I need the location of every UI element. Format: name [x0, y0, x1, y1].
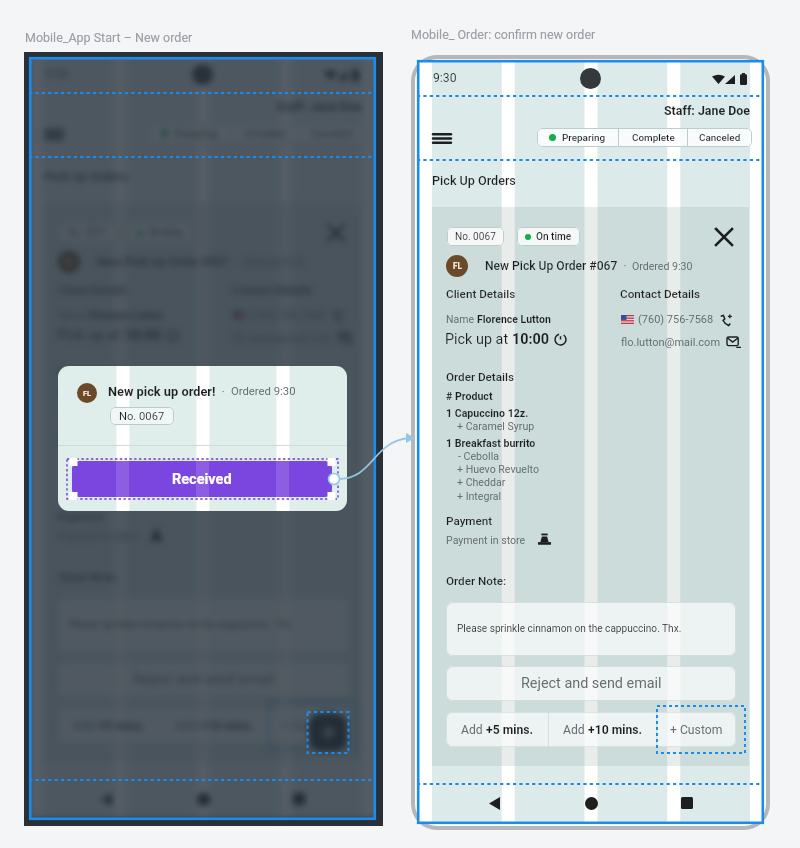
staticText: Reject and send email: [521, 675, 662, 692]
staticText: Florence Lutton: [89, 309, 163, 321]
button[interactable]: Recent apps: [284, 784, 314, 814]
button[interactable]: Received: [72, 461, 332, 497]
button[interactable]: Preparing: [149, 124, 230, 143]
button[interactable]: Close: [324, 221, 347, 244]
staticText: 9:30: [433, 71, 457, 85]
button[interactable]: Add: [161, 708, 268, 743]
staticText: + Cheddar: [69, 472, 118, 484]
staticText: Ordered 9:30: [632, 260, 693, 272]
staticText: Name: [446, 313, 477, 325]
staticText: 10:00: [512, 331, 550, 348]
staticText: flo.lutton@mail.com: [621, 336, 721, 349]
button[interactable]: Back: [91, 784, 121, 814]
button[interactable]: Add: [446, 712, 548, 747]
button[interactable]: Complete: [231, 124, 299, 143]
staticText: + Huevo Revuelto: [69, 459, 151, 471]
button[interactable]: Preparing: [537, 128, 618, 147]
staticText: +10 mins.: [588, 723, 643, 737]
button[interactable]: No. 0067: [447, 227, 504, 246]
staticText: +5 mins.: [98, 719, 146, 733]
staticText: + Caramel Syrup: [69, 416, 147, 428]
staticText: + Custom: [670, 723, 723, 737]
button[interactable]: Home: [188, 784, 218, 814]
button[interactable]: Menu: [429, 127, 455, 149]
staticText: Mobile_App Start – New order: [25, 30, 193, 45]
staticText: Client Details: [446, 287, 516, 301]
button[interactable]: Menu: [41, 123, 67, 145]
button[interactable]: Home: [576, 788, 606, 818]
button[interactable]: Add: [58, 708, 160, 743]
button[interactable]: Add order: [309, 713, 347, 751]
staticText: +5 mins.: [486, 723, 534, 737]
staticText: Order Note:: [58, 570, 119, 584]
button[interactable]: + Custom: [269, 708, 348, 743]
staticText: 1 Breakfast burrito: [446, 437, 536, 449]
staticText: Order Note:: [446, 574, 507, 588]
staticText: + Cheddar: [457, 476, 506, 488]
staticText: Florence Lutton: [477, 313, 551, 325]
staticText: (760) 756-7568: [638, 313, 714, 326]
staticText: Payment: [58, 510, 105, 524]
staticText: Add: [563, 723, 588, 737]
staticText: + Caramel Syrup: [457, 420, 535, 432]
button[interactable]: Add: [549, 712, 656, 747]
staticText: 1 Capuccino 12z.: [446, 407, 529, 419]
staticText: # Product: [446, 390, 493, 402]
staticText: Payment in store: [446, 534, 526, 546]
staticText: On time: [536, 231, 572, 243]
staticText: Staff: Jane Doe: [664, 103, 750, 118]
staticText: Canceled: [699, 132, 741, 144]
staticText: Pick Up Orders: [44, 169, 128, 184]
staticText: Pick Up Orders: [432, 173, 516, 188]
staticText: # Product: [58, 386, 105, 398]
staticText: Contact Details: [620, 287, 701, 301]
staticText: + Integral: [69, 486, 114, 498]
button[interactable]: On time: [517, 227, 580, 246]
staticText: +10 mins.: [200, 719, 255, 733]
staticText: Add: [461, 723, 486, 737]
staticText: - Cebolla: [458, 450, 499, 462]
staticText: Received: [172, 471, 232, 488]
staticText: ·: [618, 260, 632, 273]
button[interactable]: Back: [479, 788, 509, 818]
staticText: + Integral: [457, 490, 502, 502]
staticText: ·: [216, 385, 231, 398]
staticText: Payment: [446, 514, 493, 528]
button[interactable]: Recent apps: [672, 788, 702, 818]
staticText: Order Details: [446, 370, 515, 384]
staticText: Preparing: [562, 132, 606, 144]
staticText: 10:00: [124, 327, 162, 344]
staticText: Complete: [632, 132, 675, 144]
staticText: No. 0067: [455, 231, 496, 243]
staticText: FL: [453, 261, 462, 271]
button[interactable]: Canceled: [688, 128, 752, 147]
button[interactable]: + Custom: [657, 712, 736, 747]
staticText: New Pick Up Order #067: [97, 255, 230, 269]
staticText: Order Details: [58, 366, 127, 380]
button[interactable]: Close: [712, 225, 735, 248]
staticText: Please sprinkle cinnamon on the cappucci…: [457, 623, 682, 635]
button[interactable]: Complete: [619, 128, 687, 147]
staticText: New pick up order!: [108, 384, 216, 399]
staticText: + Huevo Revuelto: [457, 463, 539, 475]
button[interactable]: Reject and send email: [446, 666, 736, 701]
